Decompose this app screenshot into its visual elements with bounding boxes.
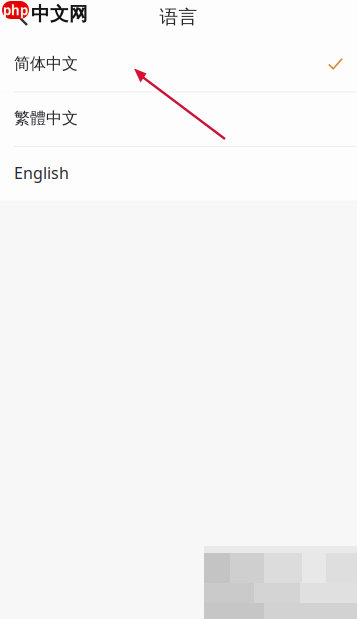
button[interactable]: English xyxy=(0,147,357,200)
staticText: php xyxy=(3,1,28,19)
staticText: 中文网 xyxy=(31,2,88,25)
staticText: 语言 xyxy=(159,5,197,28)
staticText: 繁體中文 xyxy=(14,108,78,128)
button[interactable]: 简体中文 xyxy=(0,38,357,91)
staticText: 简体中文 xyxy=(14,54,78,74)
button[interactable]: 繁體中文 xyxy=(0,92,357,146)
staticText: English xyxy=(14,162,69,183)
